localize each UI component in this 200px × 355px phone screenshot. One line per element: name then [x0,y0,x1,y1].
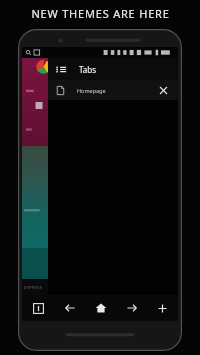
staticText: Homepage [77,87,156,94]
button[interactable]: Back [54,295,85,321]
staticText: Tabs [79,64,97,75]
button[interactable]: Tabs count [22,295,54,321]
button[interactable]: Forward [116,295,147,321]
button[interactable]: Close tab [156,83,170,97]
button[interactable]: Home [85,295,116,321]
button[interactable]: Tabs [48,58,178,80]
staticText: NEW THEMES ARE HERE [31,6,170,21]
button[interactable]: Homepage [48,80,178,100]
staticText: EXPRESS [24,285,43,290]
button[interactable]: New tab [147,295,178,321]
